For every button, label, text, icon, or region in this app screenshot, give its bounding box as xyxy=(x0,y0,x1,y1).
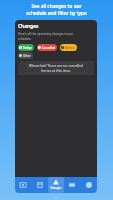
button[interactable]: Home xyxy=(15,177,31,193)
button[interactable]: Changes xyxy=(48,177,64,193)
staticText: Other xyxy=(23,54,31,58)
staticText: Service xyxy=(65,46,75,50)
staticText: Changes xyxy=(50,186,62,190)
staticText: Cancelled xyxy=(42,46,55,50)
button[interactable]: Info xyxy=(81,177,97,193)
button[interactable]: Other xyxy=(18,52,33,59)
staticText: See all changes to our schedule and filt… xyxy=(26,3,87,17)
button[interactable]: Delays xyxy=(18,44,34,51)
button[interactable]: Service xyxy=(60,44,77,51)
staticText: Changes xyxy=(18,23,39,30)
button[interactable]: Schedule xyxy=(32,177,48,193)
button[interactable]: Contact xyxy=(64,177,80,193)
button[interactable]: Cancelled xyxy=(37,44,57,51)
staticText: Here's all the upcoming changes to our s… xyxy=(18,32,74,41)
staticText: Delays xyxy=(23,46,32,50)
staticText: Whew fast! There are no cancelled ferrie… xyxy=(18,63,94,73)
